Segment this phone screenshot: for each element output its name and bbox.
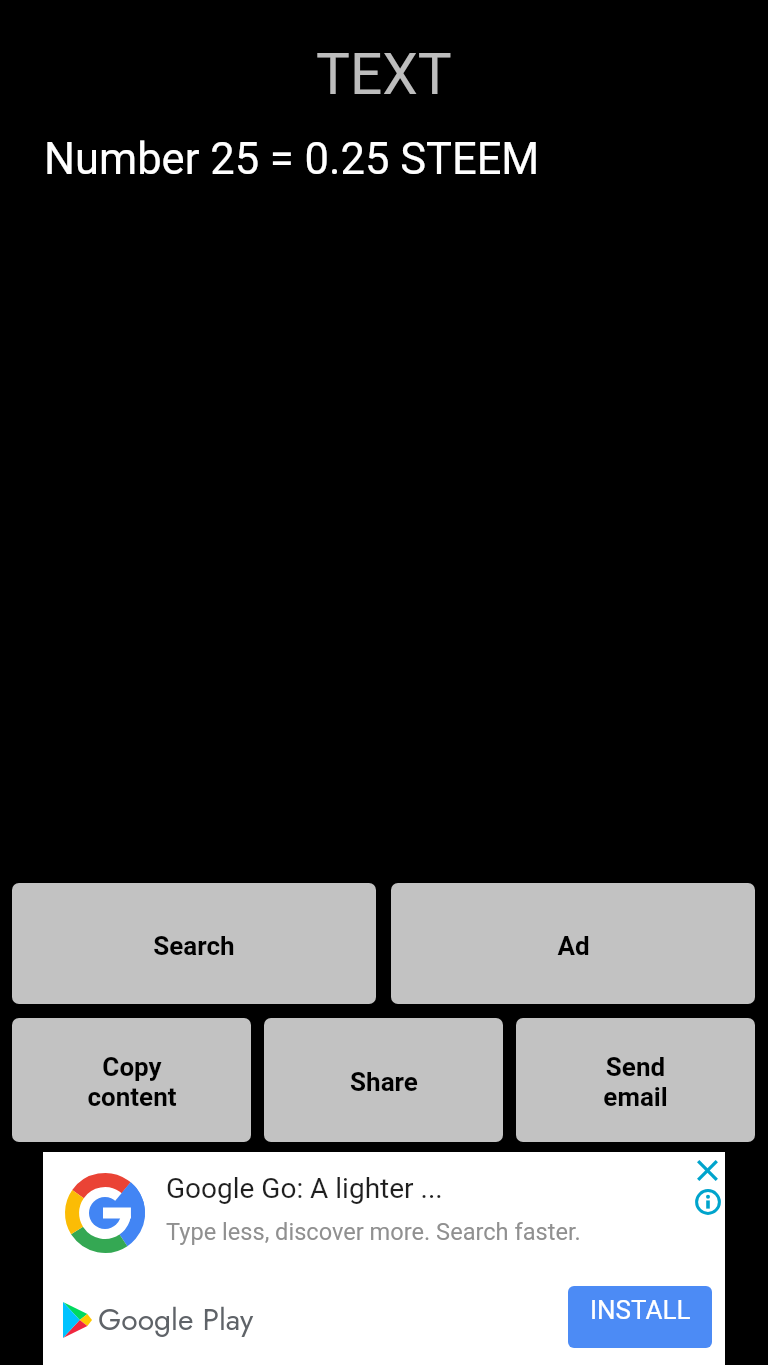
staticText: Share (350, 1067, 418, 1097)
button[interactable]: Share (264, 1018, 503, 1142)
staticText: Copy content (87, 1052, 177, 1112)
staticText: Type less, discover more. Search faster. (166, 1218, 581, 1246)
button[interactable]: Close ad (685, 1152, 730, 1189)
staticText: Number 25 = 0.25 STEEM (44, 134, 540, 185)
button[interactable]: Ad info (685, 1182, 731, 1222)
button[interactable]: Google Go: A lighter ... (43, 1152, 725, 1365)
staticText: INSTALL (590, 1295, 691, 1325)
button[interactable]: Ad (391, 883, 755, 1004)
staticText: TEXT (316, 41, 452, 108)
staticText: Search (153, 931, 235, 961)
staticText: Google Go: A lighter ... (166, 1172, 443, 1205)
staticText: Send email (603, 1052, 668, 1112)
staticText: Ad (557, 931, 590, 961)
button[interactable]: Search (12, 883, 376, 1004)
button[interactable]: INSTALL (568, 1286, 712, 1348)
button[interactable]: Copy content (12, 1018, 251, 1142)
button[interactable]: Send email (516, 1018, 755, 1142)
staticText: Google Play (98, 1298, 254, 1341)
